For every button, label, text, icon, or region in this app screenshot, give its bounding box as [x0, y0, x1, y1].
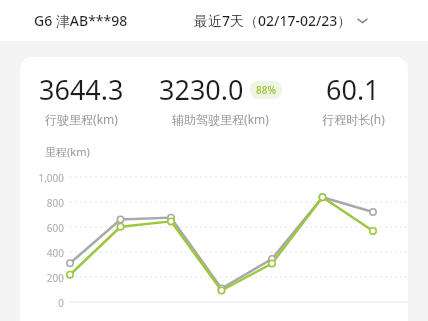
staticText: 里程(km): [45, 144, 90, 159]
staticText: 1,000: [20, 171, 64, 185]
staticText: 60.1: [326, 71, 380, 108]
button[interactable]: 最近7天（02/17-02/23）: [194, 11, 369, 30]
staticText: 600: [20, 221, 64, 235]
button[interactable]: 3230.0: [142, 71, 298, 127]
staticText: 辅助驾驶里程(km): [172, 111, 269, 127]
other: Change date range: [356, 14, 369, 27]
staticText: 200: [20, 271, 64, 285]
staticText: 0: [20, 296, 64, 310]
staticText: 3230.0: [159, 71, 244, 108]
button[interactable]: 3644.3: [20, 71, 142, 127]
staticText: 行驶里程(km): [45, 111, 118, 127]
staticText: 88%: [256, 83, 276, 97]
button[interactable]: 60.1: [298, 71, 408, 127]
staticText: 行程时长(h): [322, 111, 385, 127]
staticText: 3644.3: [39, 71, 124, 108]
staticText: 400: [20, 246, 64, 260]
staticText: 800: [20, 196, 64, 210]
staticText: 最近7天（02/17-02/23）: [194, 11, 352, 30]
button[interactable]: G6 津AB***98: [34, 11, 128, 30]
